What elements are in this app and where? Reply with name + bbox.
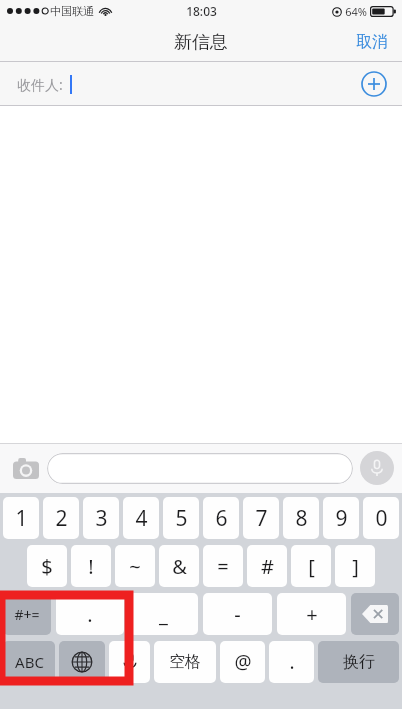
button[interactable]: #+= xyxy=(3,593,51,635)
staticText: 取消 xyxy=(356,32,388,52)
staticText: 64% xyxy=(345,4,367,19)
staticText: $ xyxy=(41,553,53,580)
button[interactable]: Switch keyboard xyxy=(59,641,105,683)
staticText: 换行 xyxy=(343,652,375,672)
button[interactable]: 收件人: xyxy=(0,62,402,106)
button[interactable]: ~ xyxy=(115,545,155,587)
button[interactable]: @ xyxy=(220,641,265,683)
staticText: ~ xyxy=(129,553,141,580)
button[interactable]: Camera xyxy=(8,450,44,486)
staticText: _ xyxy=(159,601,168,628)
staticText: 空格 xyxy=(169,652,201,672)
button[interactable]: 2 xyxy=(43,497,79,539)
staticText: . xyxy=(289,649,295,675)
staticText: 18:03 xyxy=(186,3,217,19)
button[interactable]: ABC xyxy=(3,641,55,683)
staticText: # xyxy=(261,553,274,580)
button[interactable]: . xyxy=(56,593,124,635)
staticText: ! xyxy=(88,553,94,580)
button[interactable]: 8 xyxy=(283,497,319,539)
staticText: 3 xyxy=(95,504,108,533)
staticText: 7 xyxy=(255,504,268,533)
staticText: + xyxy=(306,601,318,628)
button[interactable]: 5 xyxy=(163,497,199,539)
button[interactable]: ! xyxy=(71,545,111,587)
button[interactable]: $ xyxy=(27,545,67,587)
button[interactable]: + xyxy=(277,593,346,635)
staticText: @ xyxy=(234,649,252,675)
button[interactable]: 3 xyxy=(83,497,119,539)
button[interactable]: . xyxy=(269,641,314,683)
button[interactable]: Delete xyxy=(351,593,399,635)
button[interactable]: # xyxy=(247,545,287,587)
staticText: 5 xyxy=(175,504,188,533)
staticText: 新信息 xyxy=(174,31,228,54)
button[interactable]: 9 xyxy=(323,497,359,539)
button[interactable]: 空格 xyxy=(154,641,216,683)
staticText: 中国联通 xyxy=(50,4,94,18)
staticText: & xyxy=(172,553,187,580)
button[interactable]: - xyxy=(203,593,272,635)
button[interactable]: Add contact xyxy=(359,69,389,99)
staticText: 0 xyxy=(375,504,388,533)
button[interactable]: 4 xyxy=(123,497,159,539)
button[interactable]: 1 xyxy=(3,497,39,539)
staticText: ABC xyxy=(15,652,44,672)
staticText: 1 xyxy=(15,504,28,533)
button[interactable]: 0 xyxy=(363,497,399,539)
button[interactable]: _ xyxy=(129,593,198,635)
staticText: 收件人: xyxy=(17,75,63,94)
staticText: 2 xyxy=(55,504,68,533)
button[interactable]: = xyxy=(203,545,243,587)
button[interactable] xyxy=(47,453,353,484)
staticText: ] xyxy=(352,553,359,580)
button[interactable]: 6 xyxy=(203,497,239,539)
button[interactable]: 取消 xyxy=(342,23,402,61)
staticText: 9 xyxy=(335,504,348,533)
staticText: 6 xyxy=(215,504,228,533)
staticText: #+= xyxy=(14,605,40,624)
staticText: = xyxy=(217,553,229,580)
staticText: 8 xyxy=(295,504,308,533)
button[interactable]: ] xyxy=(335,545,375,587)
button[interactable]: 7 xyxy=(243,497,279,539)
button[interactable]: 换行 xyxy=(318,641,399,683)
button[interactable]: & xyxy=(159,545,199,587)
staticText: 4 xyxy=(135,504,148,533)
staticText: . xyxy=(87,601,93,628)
staticText: - xyxy=(234,601,241,628)
staticText: [ xyxy=(308,553,315,580)
button[interactable]: Dictation xyxy=(109,641,150,683)
button[interactable]: Voice message xyxy=(360,451,394,485)
button[interactable]: [ xyxy=(291,545,331,587)
